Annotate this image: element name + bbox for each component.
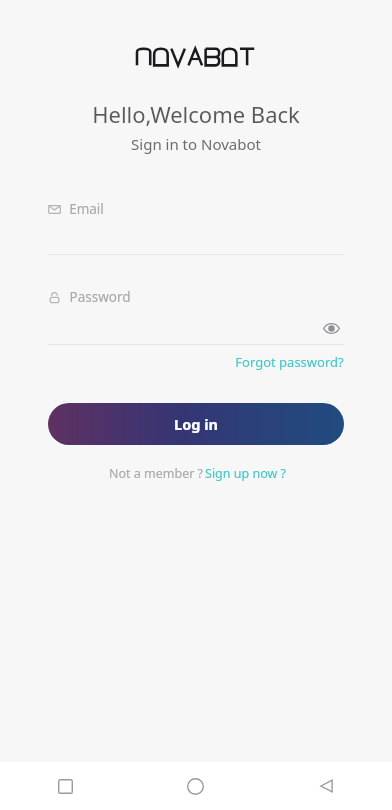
button[interactable]: Recent apps [0, 762, 130, 810]
staticText: Forgot password? [235, 353, 344, 371]
button[interactable]: Forgot password? [235, 351, 344, 373]
button[interactable]: Show password [318, 315, 344, 341]
staticText: Sign in to Novabot [131, 134, 261, 154]
staticText: Sign up now ? [205, 465, 286, 482]
staticText: Log in [174, 414, 218, 434]
button[interactable]: Sign up now ? [205, 465, 286, 482]
button[interactable]: Email [48, 200, 344, 255]
button[interactable]: Home [130, 762, 261, 810]
other: Novabot [137, 46, 255, 68]
staticText: Email [69, 200, 104, 218]
staticText: Not a member ? [107, 465, 205, 482]
button[interactable]: Back [261, 762, 392, 810]
staticText: Hello,Welcome Back [92, 99, 300, 129]
button[interactable]: Password [48, 288, 131, 306]
staticText: Password [69, 288, 131, 306]
button[interactable]: Log in [48, 403, 344, 445]
